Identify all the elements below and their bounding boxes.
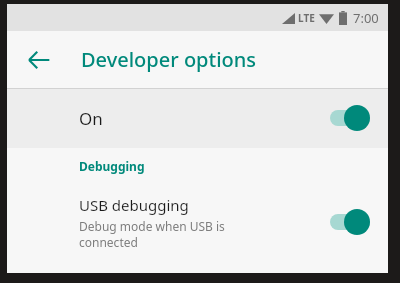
- staticText: USB debugging: [79, 195, 189, 215]
- staticText: Developer options: [81, 46, 257, 73]
- staticText: Debug mode when USB is connected: [79, 218, 225, 250]
- button[interactable]: Toggle: [330, 209, 370, 235]
- button[interactable]: On: [7, 88, 388, 148]
- staticText: LTE: [298, 11, 315, 25]
- staticText: On: [79, 107, 103, 130]
- button[interactable]: Toggle: [330, 105, 370, 131]
- staticText: 7:00: [353, 9, 379, 27]
- button[interactable]: USB debugging: [7, 183, 388, 261]
- button[interactable]: Back: [19, 40, 59, 80]
- staticText: Debugging: [79, 158, 145, 174]
